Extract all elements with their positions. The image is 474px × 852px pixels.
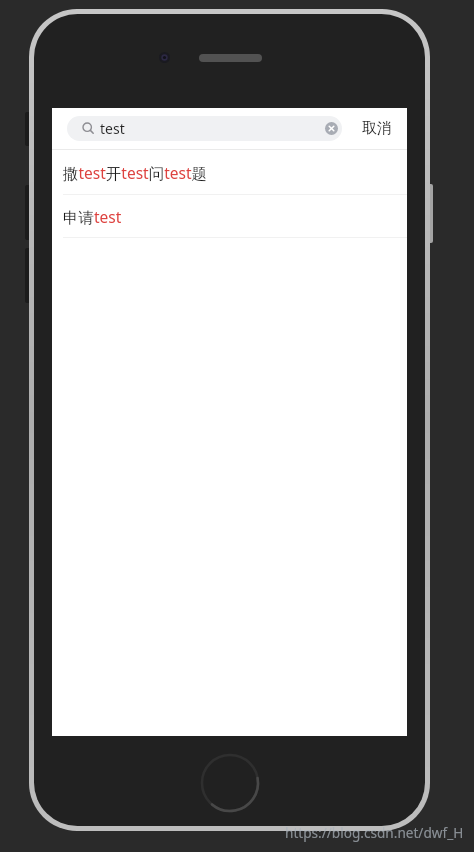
staticText: test [100, 119, 125, 138]
staticText: 撒test开test问test题 [63, 162, 208, 183]
button[interactable]: test [67, 116, 342, 141]
button[interactable]: 撒test开test问test题 [52, 150, 407, 194]
button[interactable]: 取消 [342, 108, 406, 149]
staticText: https://blog.csdn.net/dwf_H [285, 823, 464, 842]
staticText: 取消 [362, 119, 392, 138]
staticText: 申请test [63, 206, 122, 227]
button[interactable]: 申请test [52, 195, 407, 237]
button[interactable] [325, 122, 338, 135]
button[interactable] [201, 754, 259, 812]
